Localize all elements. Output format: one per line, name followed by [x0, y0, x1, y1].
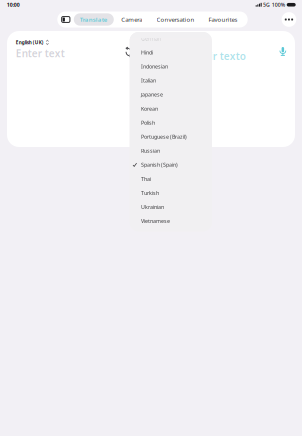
staticText: Hindi [141, 49, 153, 56]
button[interactable]: Conversation [150, 13, 202, 26]
button[interactable]: More [282, 12, 296, 27]
staticText: English (UK) [16, 39, 44, 46]
button[interactable]: German [129, 31, 212, 45]
button[interactable]: Japanese [129, 87, 212, 102]
button[interactable]: Hindi [129, 45, 212, 59]
button[interactable]: Ukrainian [129, 200, 212, 214]
button[interactable]: Introducir texto [169, 49, 246, 63]
button[interactable]: Vietnamese [129, 214, 212, 228]
button[interactable]: Indonesian [129, 59, 212, 73]
button[interactable]: English (UK) [16, 39, 49, 46]
staticText: Conversation [157, 15, 195, 24]
staticText: Turkish [141, 189, 159, 196]
button[interactable]: Thai [129, 172, 212, 186]
button[interactable]: Spanish (Spain) [129, 158, 212, 172]
staticText: Favourites [208, 15, 237, 24]
button[interactable]: Swap languages [124, 47, 133, 57]
staticText: Portuguese (Brazil) [141, 133, 187, 140]
staticText: Ukrainian [141, 203, 164, 211]
staticText: 10:00 [7, 1, 20, 8]
staticText: 5G [263, 1, 270, 8]
staticText: Polish [141, 119, 155, 126]
staticText: Camera [121, 15, 142, 24]
button[interactable]: Listen [279, 45, 286, 54]
staticText: Translate [80, 15, 108, 24]
button[interactable]: Sidebar [58, 11, 74, 27]
staticText: Japanese [141, 91, 163, 98]
button[interactable]: Portuguese (Brazil) [129, 130, 212, 144]
staticText: Italian [141, 77, 156, 84]
button[interactable]: Turkish [129, 186, 212, 200]
staticText: Korean [141, 105, 158, 112]
staticText: Spanish (Spain) [141, 161, 178, 168]
button[interactable]: Translate [74, 13, 114, 26]
staticText: Thai [141, 175, 151, 182]
staticText: Introducir texto [169, 49, 246, 63]
staticText: 100% [272, 1, 285, 8]
staticText: German [141, 35, 161, 42]
staticText: Russian [141, 147, 160, 154]
button[interactable]: Polish [129, 116, 212, 130]
staticText: Enter text [16, 47, 65, 60]
button[interactable]: Camera [114, 13, 150, 26]
button[interactable]: Korean [129, 101, 212, 116]
staticText: Indonesian [141, 63, 168, 70]
button[interactable]: Favourites [202, 13, 244, 26]
button[interactable]: Italian [129, 73, 212, 88]
staticText: Vietnamese [141, 217, 170, 225]
button[interactable]: Russian [129, 144, 212, 158]
button[interactable]: Enter text [16, 47, 65, 60]
